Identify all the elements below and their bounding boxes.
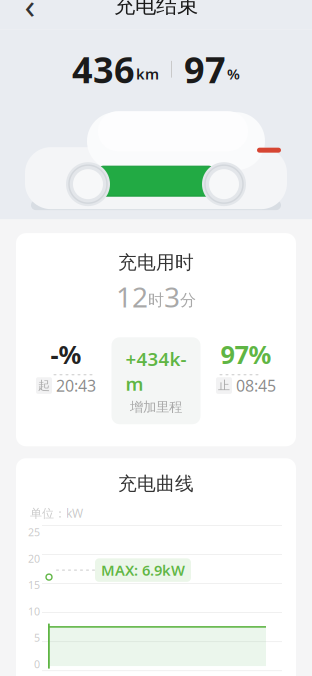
staticText: 增加里程 — [130, 399, 182, 415]
staticText: km — [136, 64, 159, 83]
staticText: 单位：kW — [30, 505, 83, 521]
staticText: 97% — [220, 337, 271, 371]
staticText: 436 — [72, 45, 135, 93]
staticText: 起 — [38, 378, 50, 393]
staticText: 充电用时 — [118, 251, 194, 274]
staticText: 止 — [218, 378, 230, 393]
staticText: 12 — [116, 278, 148, 315]
staticText: MAX: 6.9kW — [101, 560, 185, 580]
staticText: ‹ — [24, 0, 35, 28]
staticText: 15 — [28, 578, 40, 592]
staticText: 20:43 — [56, 375, 96, 396]
staticText: 3 — [164, 278, 180, 315]
staticText: -% — [50, 337, 81, 371]
staticText: 充电曲线 — [118, 472, 194, 495]
staticText: 分 — [180, 290, 196, 310]
staticText: 20 — [28, 551, 40, 566]
staticText: 0 — [34, 657, 40, 671]
staticText: +434km — [125, 346, 186, 396]
staticText: 25 — [28, 525, 40, 539]
button[interactable]: Back — [10, 0, 50, 23]
staticText: 97 — [184, 45, 226, 93]
staticText: 10 — [28, 604, 40, 618]
staticText: 5 — [34, 631, 40, 645]
staticText: 时 — [148, 290, 164, 310]
staticText: 充电结束 — [114, 0, 198, 18]
staticText: 08:45 — [236, 375, 276, 396]
staticText: % — [227, 64, 240, 83]
